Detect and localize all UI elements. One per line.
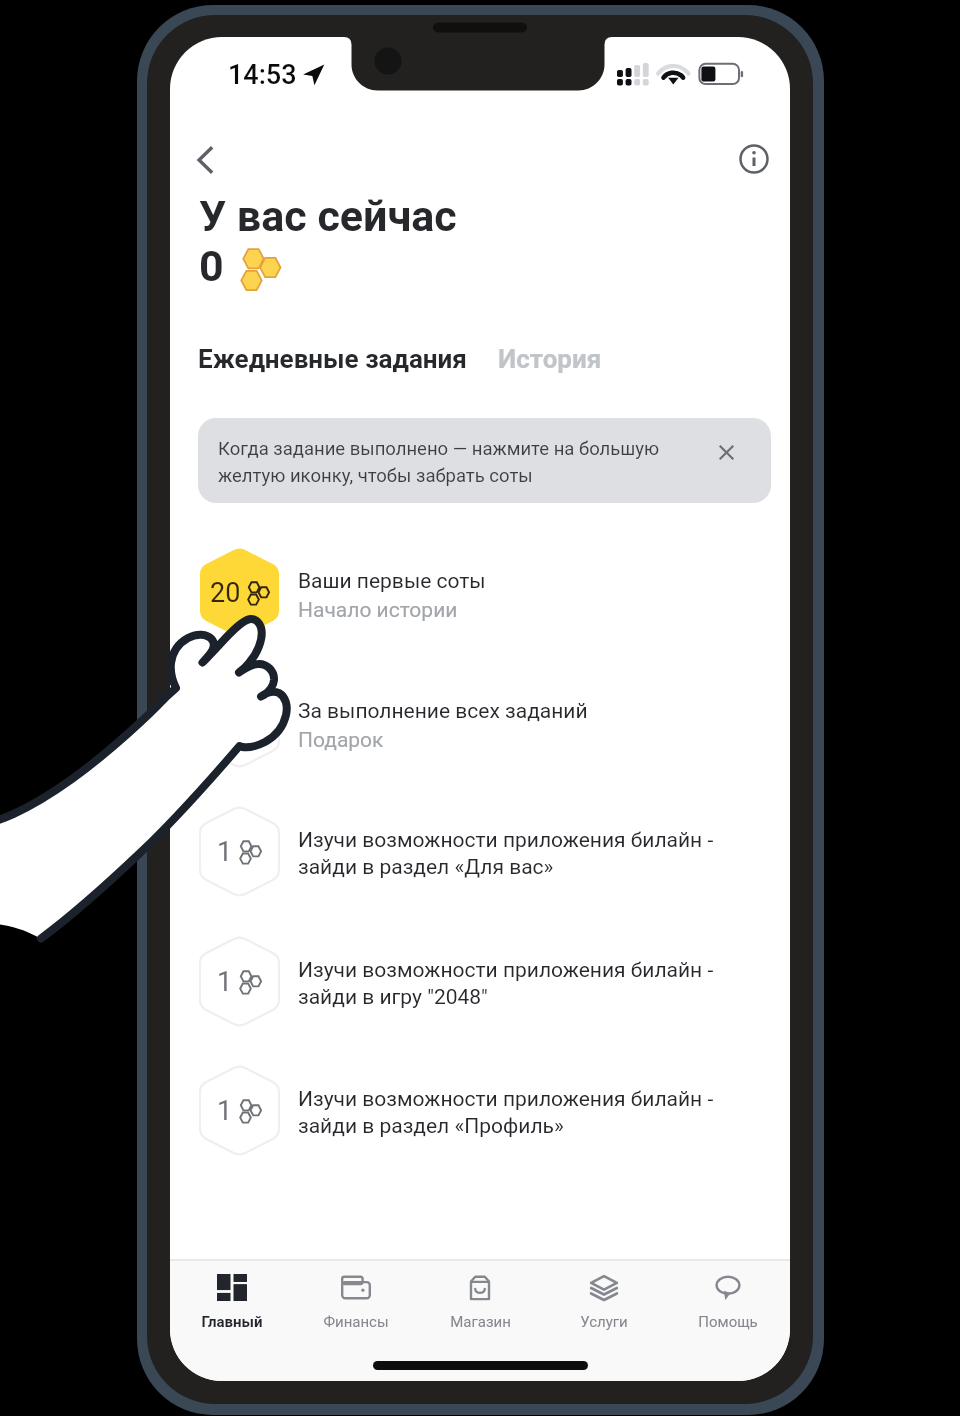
button[interactable]: Information <box>732 137 776 181</box>
button[interactable]: Главный <box>170 1274 294 1331</box>
button[interactable]: История <box>498 344 602 374</box>
button[interactable]: 1 <box>170 919 790 1043</box>
button[interactable]: Магазин <box>418 1274 542 1331</box>
staticText: Ежедневные задания <box>198 344 467 374</box>
button[interactable]: Финансы <box>294 1274 418 1331</box>
staticText: Услуги <box>580 1313 628 1331</box>
button[interactable]: Услуги <box>542 1274 666 1331</box>
staticText: Помощь <box>698 1313 758 1331</box>
button[interactable]: Back <box>186 136 234 184</box>
staticText: История <box>498 344 602 374</box>
staticText: 0 <box>199 241 224 291</box>
button[interactable]: 20 <box>170 530 790 654</box>
staticText: 14:53 <box>228 59 297 91</box>
staticText: Изучи возможности приложения билайн - за… <box>298 828 730 879</box>
staticText: Ваши первые соты <box>298 569 730 594</box>
button[interactable]: Close <box>708 434 745 471</box>
staticText: 1 <box>217 966 233 998</box>
staticText: Главный <box>201 1313 263 1331</box>
button[interactable]: Помощь <box>666 1274 790 1331</box>
staticText: 20 <box>210 577 241 609</box>
button[interactable]: Ежедневные задания <box>198 344 467 374</box>
staticText: Магазин <box>450 1313 511 1331</box>
staticText: Начало истории <box>298 598 458 623</box>
staticText: За выполнение всех заданий <box>298 699 730 724</box>
button[interactable]: 10 <box>170 660 790 784</box>
staticText: Изучи возможности приложения билайн - за… <box>298 958 730 1009</box>
staticText: Когда задание выполнено — нажмите на бол… <box>218 438 678 486</box>
staticText: У вас сейчас <box>199 191 457 241</box>
button[interactable]: 1 <box>170 789 790 913</box>
button[interactable]: 1 <box>170 1048 790 1172</box>
staticText: Подарок <box>298 728 384 753</box>
staticText: Финансы <box>323 1313 389 1331</box>
staticText: Изучи возможности приложения билайн - за… <box>298 1087 730 1138</box>
staticText: 1 <box>217 1095 233 1127</box>
staticText: 1 <box>217 836 233 868</box>
